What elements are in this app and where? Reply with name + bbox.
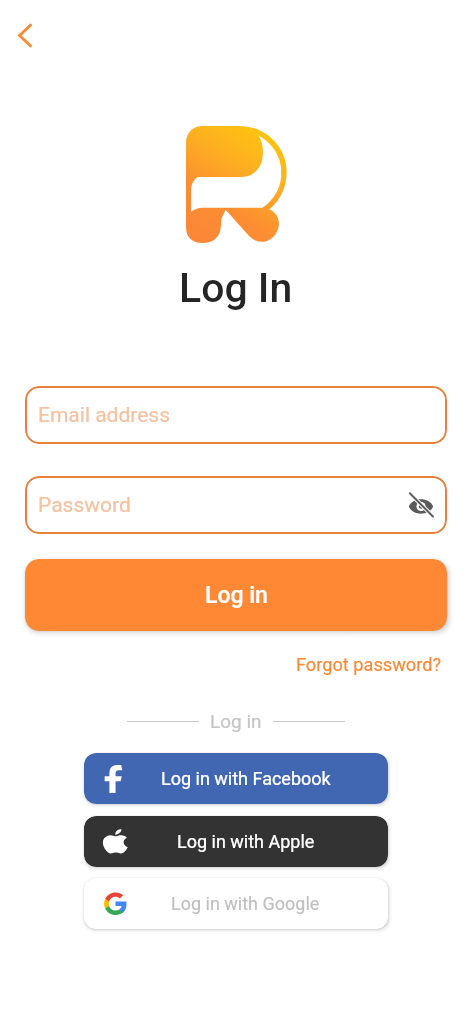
button[interactable]: Password (25, 476, 447, 534)
staticText: Email address (38, 403, 171, 428)
staticText: Log in with Apple (177, 831, 315, 852)
staticText: Password (38, 493, 131, 518)
button[interactable]: Log in (25, 559, 447, 631)
button[interactable]: Email address (25, 386, 447, 444)
button[interactable]: Back (3, 13, 47, 57)
staticText: Log in with Google (171, 893, 320, 914)
staticText: Log in (210, 710, 262, 732)
staticText: Log in with Facebook (161, 768, 331, 789)
staticText: Log in (205, 582, 268, 609)
button[interactable]: Show password (403, 487, 439, 523)
button[interactable]: Log in with Google (84, 878, 388, 929)
button[interactable]: Log in with Facebook (84, 753, 388, 804)
button[interactable]: Forgot password? (294, 651, 444, 678)
button[interactable]: Log in with Apple (84, 816, 388, 867)
staticText: Log In (179, 264, 293, 312)
